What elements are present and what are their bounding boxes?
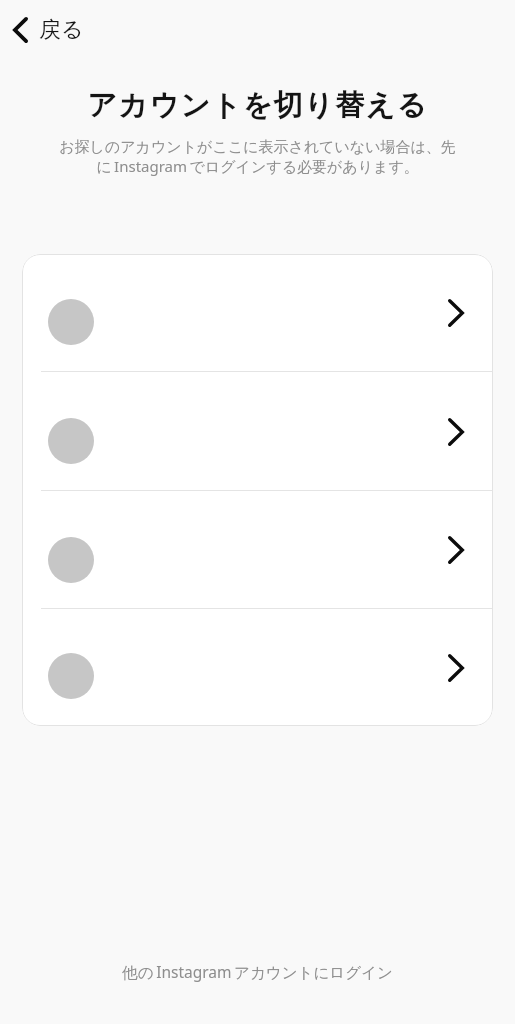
other: Select account <box>448 654 464 682</box>
button[interactable]: Select account <box>22 372 493 491</box>
button[interactable]: Select account <box>22 609 493 726</box>
other: Select account <box>448 299 464 327</box>
other: Select account <box>448 418 464 446</box>
button[interactable]: Back <box>0 0 515 60</box>
other: Back <box>13 17 28 43</box>
other: Select account <box>448 536 464 564</box>
staticText: アカウントを切り替える <box>0 87 515 124</box>
staticText: お探しのアカウントがここに表示されていない場合は、先 に Instagram で… <box>0 138 515 176</box>
staticText: 戻る <box>39 16 84 44</box>
button[interactable]: Select account <box>22 254 493 372</box>
button[interactable]: Select account <box>22 491 493 609</box>
button[interactable]: 他の Instagram アカウントにログイン <box>102 951 413 992</box>
staticText: 他の Instagram アカウントにログイン <box>122 961 393 982</box>
